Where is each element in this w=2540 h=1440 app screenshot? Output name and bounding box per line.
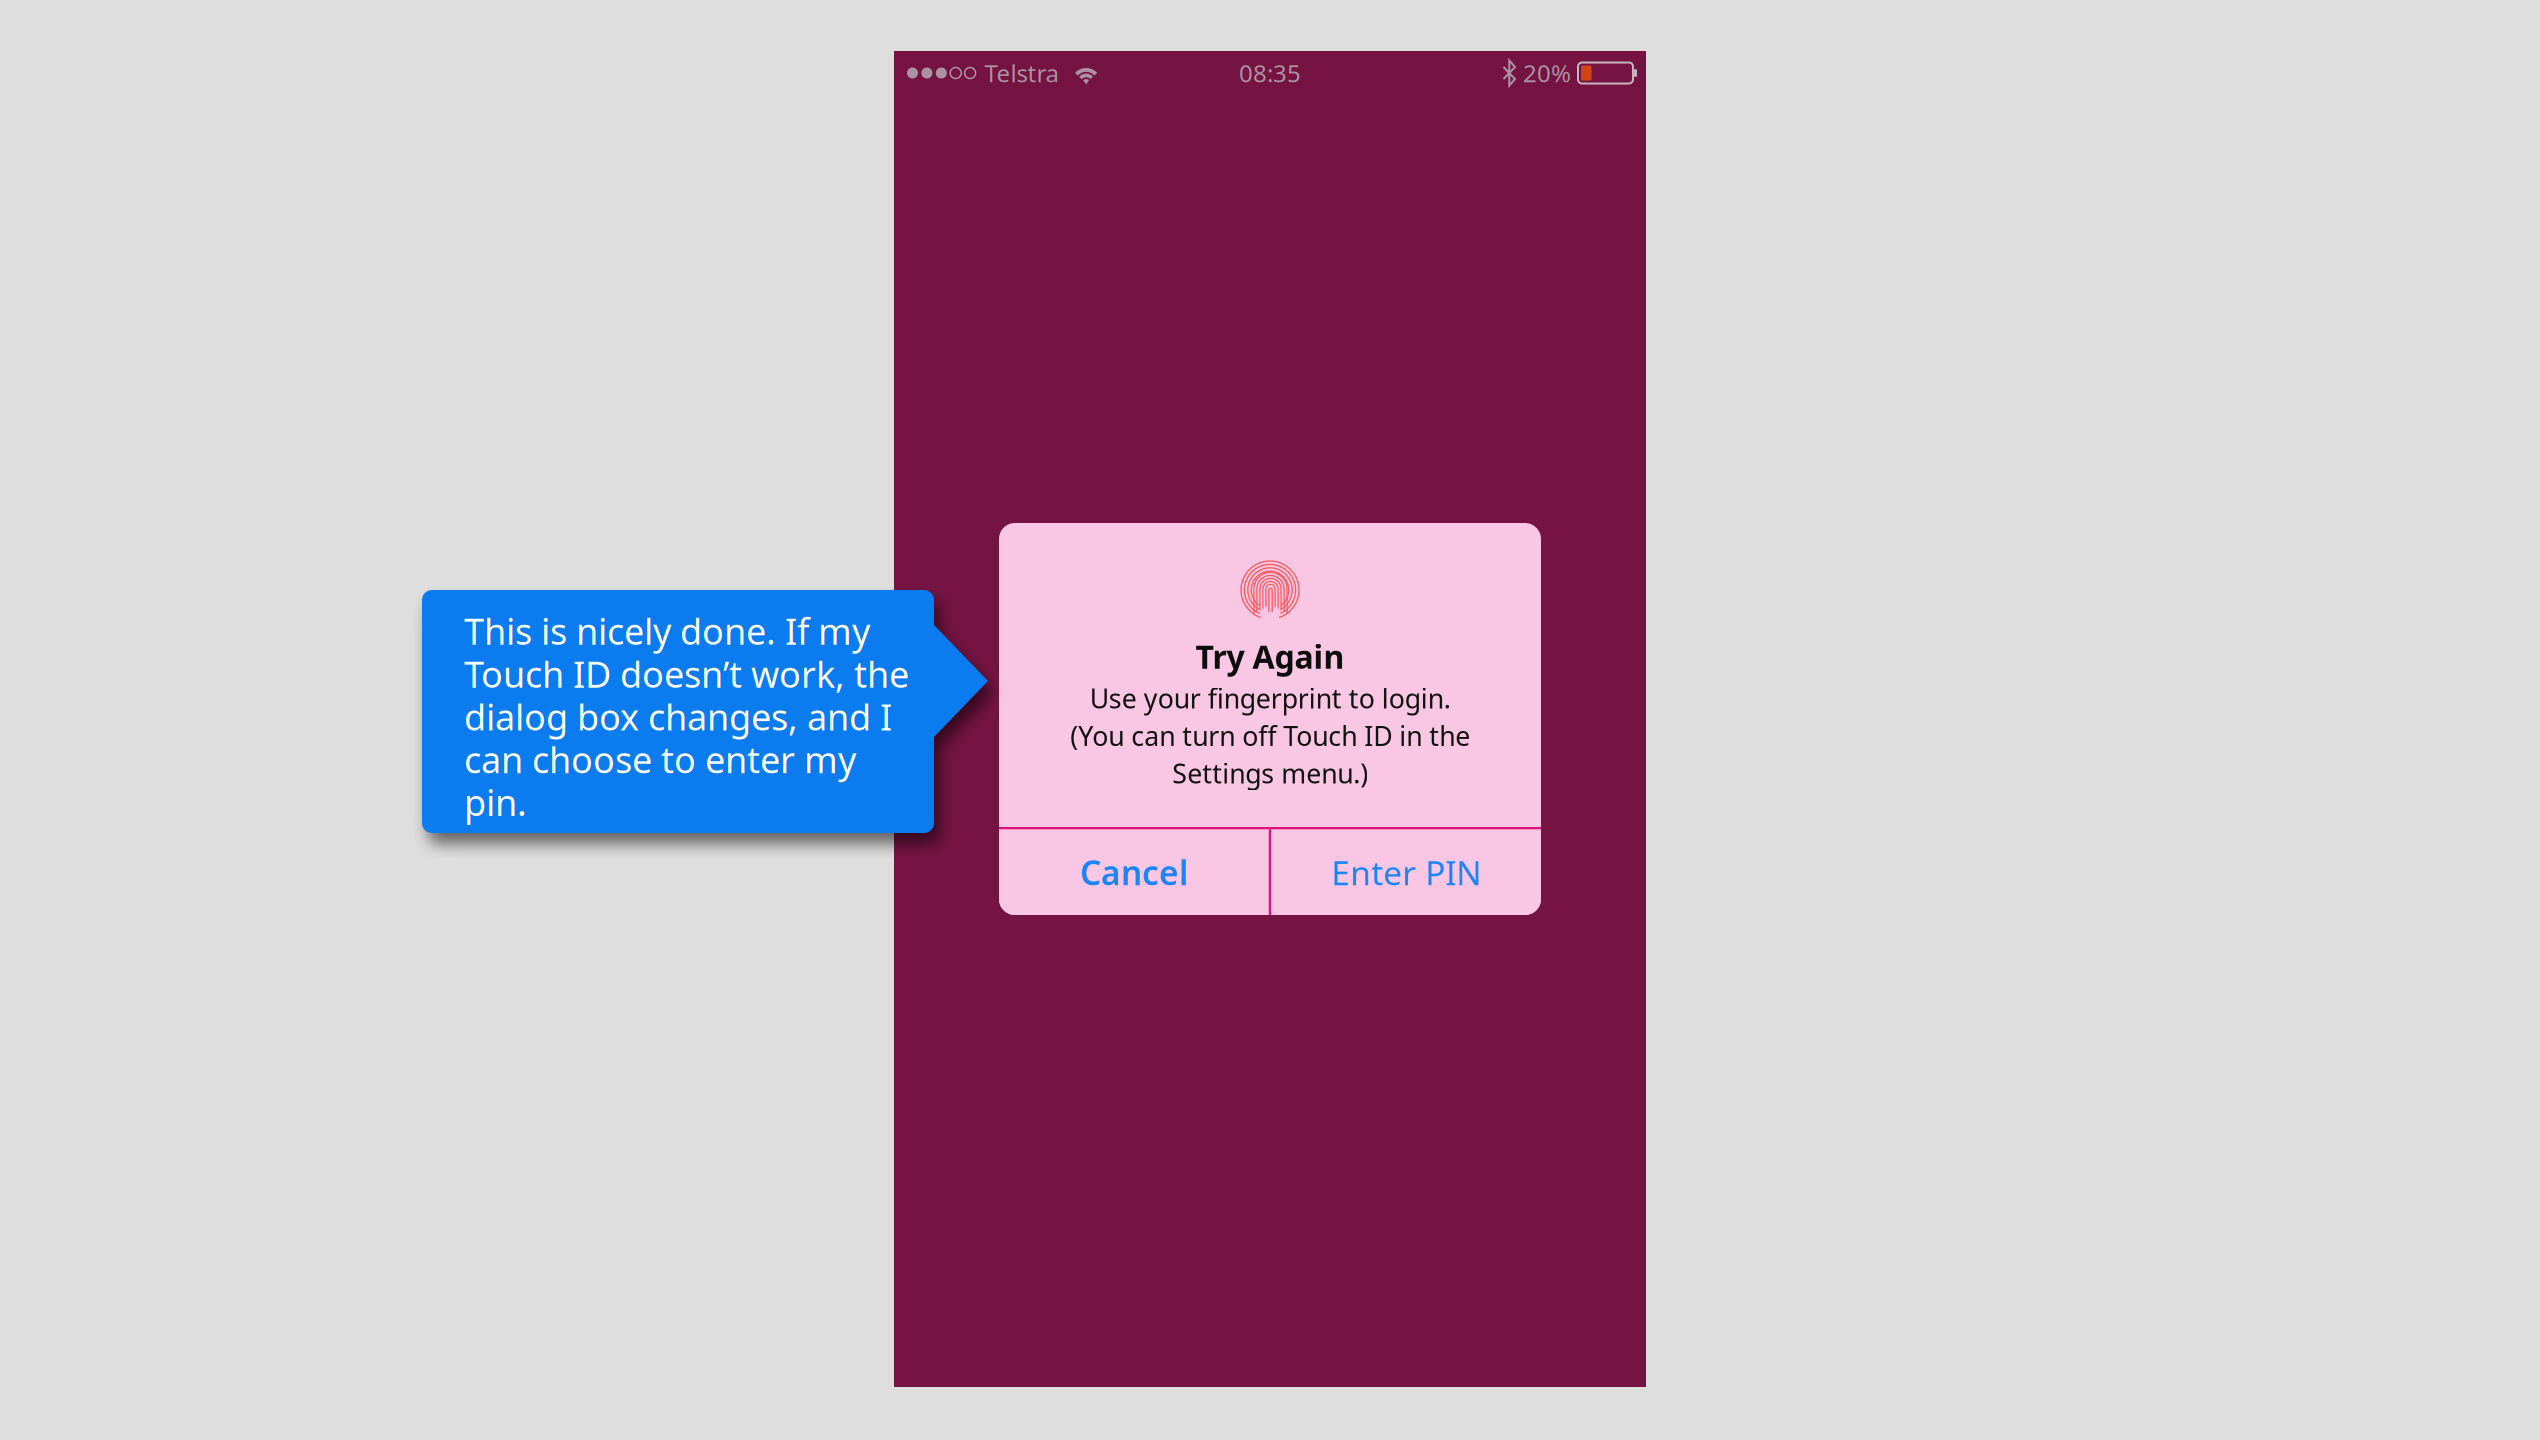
staticText: Cancel [1080, 850, 1188, 894]
button[interactable]: Cancel [999, 829, 1269, 915]
staticText: This is nicely done. If my Touch ID does… [464, 607, 909, 826]
staticText: Use your fingerprint to login. (You can … [1070, 680, 1470, 791]
button[interactable]: Enter PIN [1271, 829, 1541, 915]
staticText: Enter PIN [1331, 850, 1481, 894]
staticText: 08:35 [1239, 57, 1301, 89]
staticText: Try Again [1195, 635, 1344, 677]
staticText: Telstra [985, 57, 1059, 89]
staticText: 20% [1523, 57, 1571, 89]
